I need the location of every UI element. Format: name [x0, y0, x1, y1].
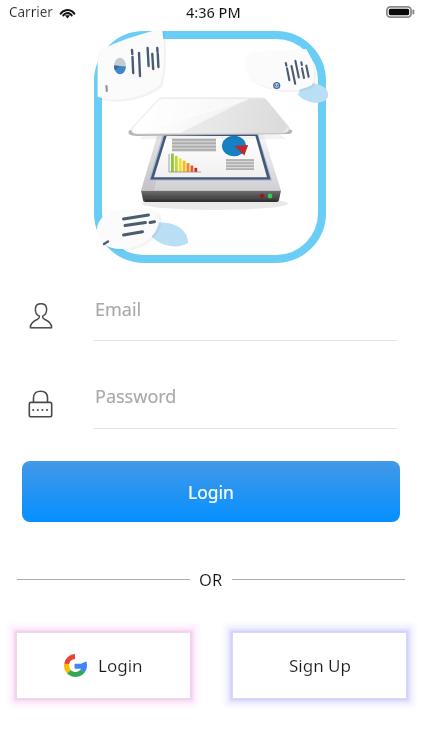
staticText: OR [199, 568, 223, 590]
staticText: Login [188, 480, 234, 504]
button[interactable]: Sign Up [232, 632, 407, 699]
staticText: Carrier [9, 3, 53, 21]
button[interactable]: Login [22, 461, 400, 522]
staticText: Login [98, 654, 143, 677]
staticText: Password [95, 384, 177, 409]
button[interactable]: Login [16, 632, 191, 699]
staticText: Sign Up [289, 654, 351, 677]
staticText: Email [95, 297, 142, 322]
staticText: 4:36 PM [186, 2, 241, 22]
